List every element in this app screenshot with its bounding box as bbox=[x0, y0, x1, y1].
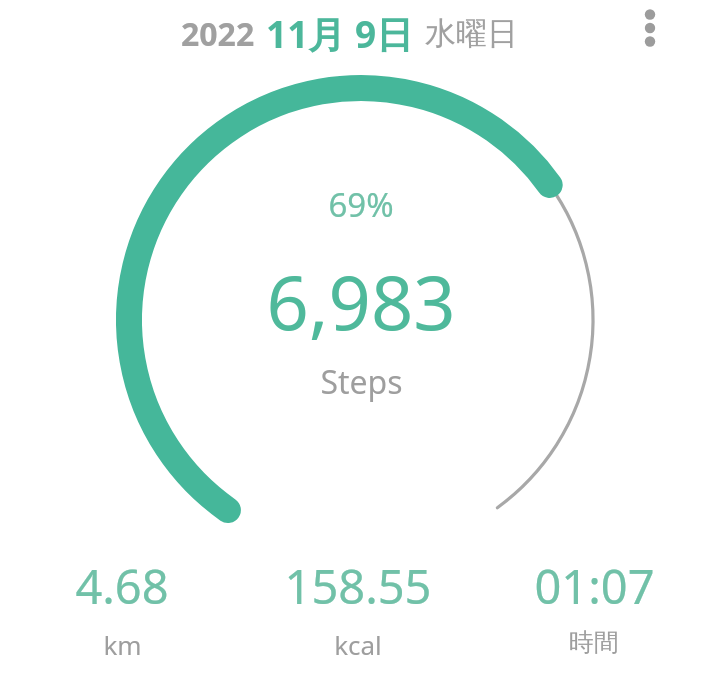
staticText: 158.55 bbox=[284, 554, 432, 618]
staticText: 2022 bbox=[181, 12, 255, 56]
button[interactable]: 69% bbox=[266, 182, 456, 404]
staticText: 11月 9日 bbox=[266, 8, 414, 59]
staticText: 6,983 bbox=[266, 251, 456, 352]
staticText: Steps bbox=[320, 360, 403, 404]
staticText: 69% bbox=[328, 182, 394, 227]
staticText: kcal bbox=[334, 627, 382, 662]
button[interactable]: 158.55 bbox=[244, 552, 472, 664]
button[interactable]: More options bbox=[624, 2, 676, 54]
staticText: km bbox=[103, 627, 142, 662]
button[interactable]: 4.68 bbox=[8, 552, 236, 664]
staticText: 時間 bbox=[569, 627, 619, 658]
button[interactable]: 01:07 bbox=[480, 552, 708, 660]
staticText: 4.68 bbox=[75, 554, 169, 618]
staticText: 水曜日 bbox=[425, 14, 518, 53]
staticText: 01:07 bbox=[534, 554, 655, 618]
